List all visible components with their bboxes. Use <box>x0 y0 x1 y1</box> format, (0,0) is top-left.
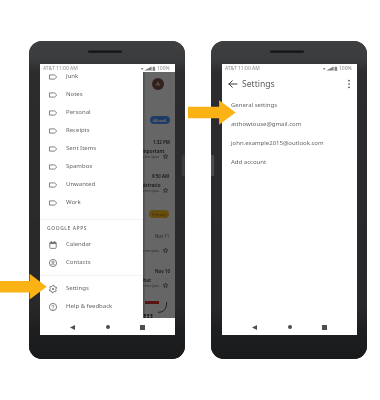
staticText: General settings <box>231 101 278 109</box>
staticText: Sent Items <box>66 144 97 152</box>
button[interactable]: Calendar <box>40 236 143 254</box>
staticText: AT&T 11:00 AM <box>225 65 260 72</box>
button[interactable]: Add account <box>222 152 357 171</box>
staticText: Spambox <box>66 162 93 170</box>
staticText: Unwanted <box>66 180 96 188</box>
button[interactable]: atthowtouse@gmail.com <box>222 114 357 133</box>
button[interactable]: General settings <box>222 95 357 114</box>
staticText: All mail <box>153 118 167 123</box>
staticText: Work <box>66 198 81 206</box>
staticText: important <box>141 148 165 154</box>
staticText: Settings <box>242 78 275 90</box>
button[interactable]: Recent apps <box>318 321 330 333</box>
button[interactable]: Junk <box>40 68 143 86</box>
staticText: Notes <box>66 90 83 98</box>
button[interactable]: Home <box>284 321 296 333</box>
button[interactable]: Spambox <box>40 158 143 176</box>
staticText: A <box>156 80 160 88</box>
button[interactable]: Recent apps <box>136 321 148 333</box>
button[interactable]: Back <box>248 321 260 333</box>
staticText: john.example2015@outlook.com <box>231 139 324 147</box>
button[interactable]: Receipts <box>40 122 143 140</box>
staticText: AT&T 11:00 AM <box>43 65 78 72</box>
button[interactable]: Unwanted <box>40 176 143 194</box>
staticText: orem ipsu <box>141 188 159 193</box>
staticText: Receipts <box>66 126 90 134</box>
button[interactable]: john.example2015@outlook.com <box>222 133 357 152</box>
staticText: atthowtouse@gmail.com <box>231 120 302 128</box>
staticText: orem ipsu <box>141 248 159 253</box>
button[interactable]: Home <box>102 321 114 333</box>
button[interactable]: Back <box>66 321 78 333</box>
staticText: Personal <box>66 108 91 116</box>
staticText: Nov 10 <box>155 268 170 274</box>
staticText: Add account <box>231 158 267 166</box>
staticText: Junk <box>66 72 79 80</box>
button[interactable]: Work <box>40 194 143 212</box>
button[interactable]: More options <box>342 77 356 91</box>
staticText: 100% <box>157 65 170 72</box>
button[interactable]: Settings <box>40 280 143 298</box>
button[interactable]: Contacts <box>40 254 143 272</box>
staticText: Primary <box>152 212 167 217</box>
button[interactable]: Sent Items <box>40 140 143 158</box>
button[interactable]: Personal <box>40 104 143 122</box>
staticText: Calendar <box>66 240 92 248</box>
staticText: Help & feedback <box>66 302 113 310</box>
staticText: orem ipsu <box>141 283 159 288</box>
button[interactable]: Help & feedback <box>40 298 143 316</box>
staticText: gistratio <box>141 182 161 188</box>
button[interactable]: Back <box>226 77 240 91</box>
staticText: 9:50 AM <box>152 173 170 179</box>
staticText: Contacts <box>66 258 91 266</box>
staticText: 100% <box>339 65 352 72</box>
staticText: 1:32 PM <box>153 139 170 145</box>
staticText: GOOGLE APPS <box>47 225 88 232</box>
staticText: chat <box>141 277 152 283</box>
staticText: Nov 11 <box>155 233 170 239</box>
staticText: orem ipsu <box>141 154 159 159</box>
staticText: Settings <box>66 284 89 292</box>
button[interactable]: Notes <box>40 86 143 104</box>
